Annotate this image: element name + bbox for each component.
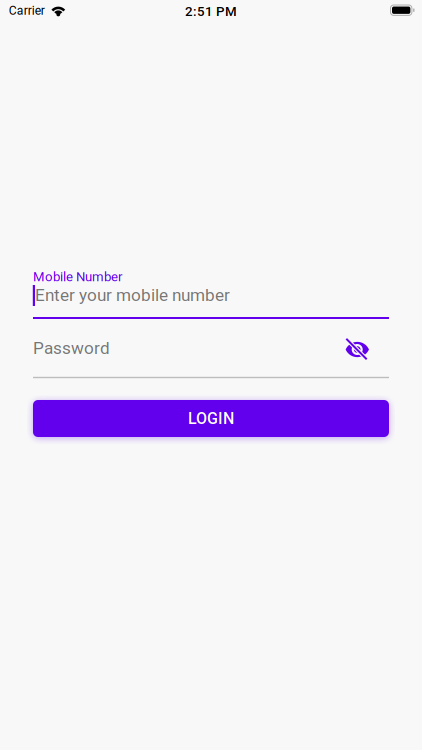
staticText: LOGIN [188, 409, 234, 428]
staticText: Enter your mobile number [35, 285, 230, 305]
button[interactable]: Show password [342, 336, 372, 362]
staticText: Password [33, 338, 110, 358]
staticText: Mobile Number [33, 269, 122, 284]
button[interactable]: LOGIN [33, 400, 389, 437]
staticText: 2:51 PM [185, 4, 237, 19]
button[interactable]: Password [33, 333, 389, 379]
button[interactable]: Mobile Number [33, 266, 389, 319]
staticText: Carrier [9, 4, 45, 18]
